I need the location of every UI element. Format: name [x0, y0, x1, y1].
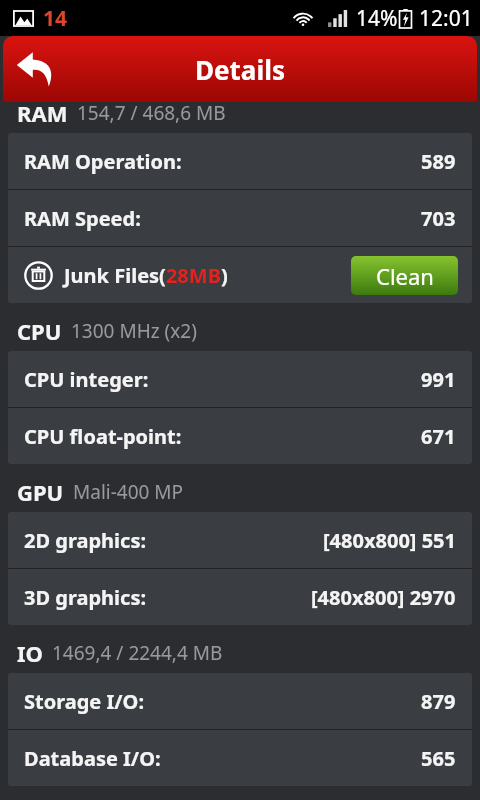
staticText: 14%: [356, 4, 398, 33]
staticText: 991: [421, 366, 456, 393]
staticText: 879: [421, 688, 456, 715]
button[interactable]: Storage I/O:: [8, 673, 472, 729]
staticText: GPU: [17, 477, 64, 507]
button[interactable]: RAM Operation:: [8, 133, 472, 189]
staticText: IO: [17, 638, 43, 668]
staticText: RAM: [17, 98, 68, 128]
button[interactable]: CPU float-point:: [8, 408, 472, 464]
button[interactable]: RAM Speed:: [8, 190, 472, 246]
button[interactable]: 2D graphics:: [8, 512, 472, 568]
button[interactable]: 3D graphics:: [8, 569, 472, 625]
staticText: CPU float-point:: [24, 423, 182, 450]
staticText: 1469,4 / 2244,4 MB: [52, 640, 223, 666]
staticText: CPU: [17, 316, 62, 346]
staticText: Database I/O:: [24, 745, 161, 772]
staticText: Clean: [376, 261, 434, 291]
staticText: Mali-400 MP: [73, 479, 184, 505]
staticText: 3D graphics:: [24, 584, 147, 611]
staticText: 671: [421, 423, 456, 450]
staticText: 2D graphics:: [24, 527, 147, 554]
staticText: RAM Operation:: [24, 148, 182, 175]
button[interactable]: CPU integer:: [8, 351, 472, 407]
staticText: 1300 MHz (x2): [71, 318, 197, 344]
staticText: [480x800] 551: [323, 527, 456, 554]
staticText: 154,7 / 468,6 MB: [77, 100, 226, 126]
button[interactable]: Junk Files(28MB): [8, 247, 472, 303]
staticText: 12:01: [419, 4, 473, 33]
staticText: RAM Speed:: [24, 205, 141, 232]
button[interactable]: Database I/O:: [8, 730, 472, 786]
button[interactable]: Clean: [351, 256, 458, 295]
staticText: Junk Files(28MB): [64, 262, 228, 289]
button[interactable]: Back: [3, 36, 69, 102]
staticText: Details: [195, 52, 285, 87]
staticText: 14: [43, 4, 68, 33]
staticText: [480x800] 2970: [311, 584, 456, 611]
staticText: Storage I/O:: [24, 688, 145, 715]
staticText: 565: [421, 745, 456, 772]
staticText: CPU integer:: [24, 366, 149, 393]
staticText: 703: [421, 205, 456, 232]
staticText: 589: [421, 148, 456, 175]
